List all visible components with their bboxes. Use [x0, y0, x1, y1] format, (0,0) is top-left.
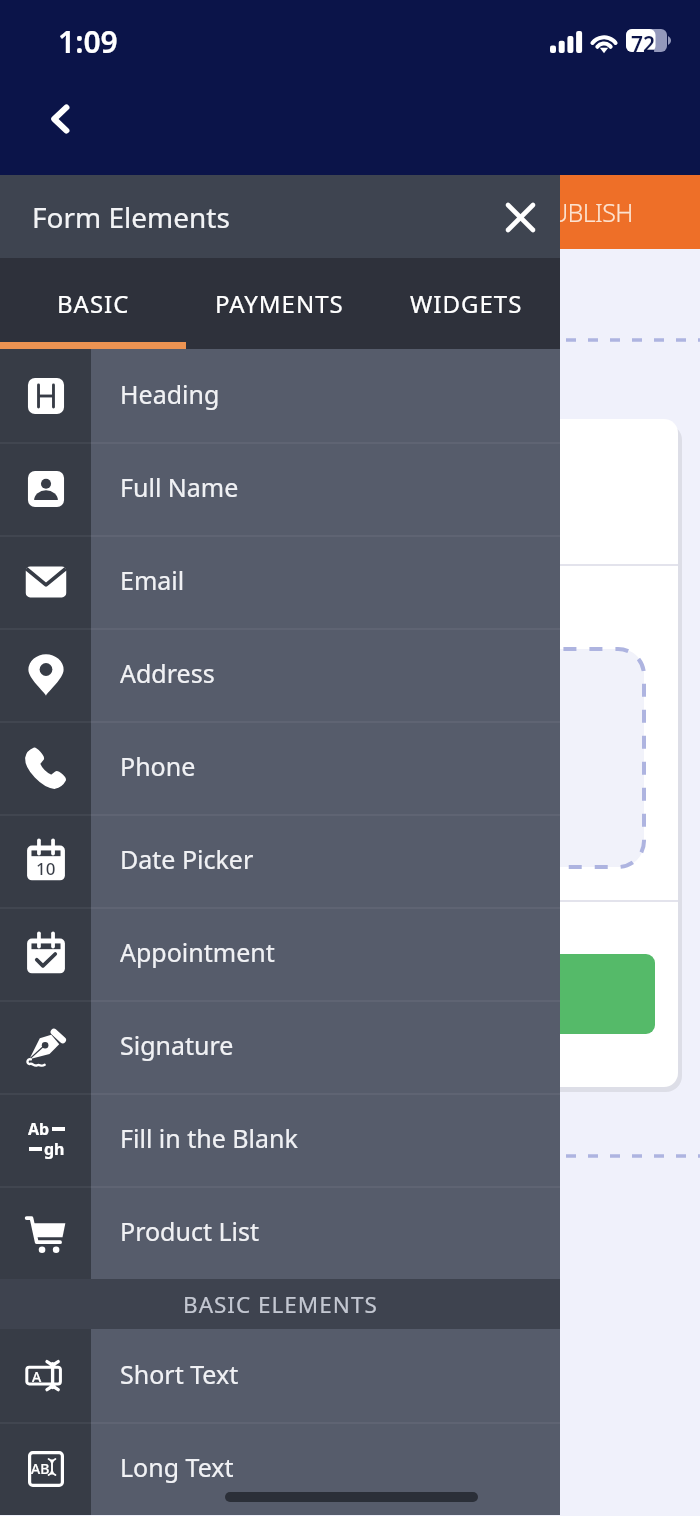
button[interactable]: Close: [489, 186, 551, 248]
button[interactable]: Back: [30, 88, 92, 150]
staticText: Appointment: [120, 935, 275, 969]
staticText: Fill in the Blank: [120, 1121, 298, 1155]
staticText: gh: [44, 1138, 65, 1160]
staticText: Long Text: [120, 1450, 234, 1484]
staticText: Heading: [120, 377, 220, 411]
button[interactable]: AB: [0, 1422, 560, 1515]
staticText: Ab: [28, 1118, 50, 1140]
button[interactable]: 10: [0, 814, 560, 907]
button[interactable]: WIDGETS: [373, 258, 560, 349]
button[interactable]: Product List: [0, 1186, 560, 1279]
button[interactable]: Full Name: [0, 442, 560, 535]
button[interactable]: Appointment: [0, 907, 560, 1000]
staticText: Date Picker: [120, 842, 254, 876]
button[interactable]: Email: [0, 535, 560, 628]
staticText: BASIC ELEMENTS: [183, 1289, 378, 1320]
button[interactable]: Heading: [0, 349, 560, 442]
button[interactable]: PAYMENTS: [186, 258, 373, 349]
staticText: 72: [631, 30, 656, 59]
staticText: Address: [120, 656, 215, 690]
staticText: AB: [31, 1459, 50, 1478]
staticText: Short Text: [120, 1357, 239, 1391]
staticText: Phone: [120, 749, 196, 783]
staticText: PAYMENTS: [215, 287, 344, 320]
staticText: BASIC: [57, 287, 130, 320]
button[interactable]: Phone: [0, 721, 560, 814]
staticText: Product List: [120, 1214, 259, 1248]
button[interactable]: Signature: [0, 1000, 560, 1093]
staticText: WIDGETS: [410, 287, 523, 320]
staticText: Full Name: [120, 470, 239, 504]
staticText: Form Elements: [32, 198, 230, 236]
staticText: Email: [120, 563, 185, 597]
button[interactable]: Address: [0, 628, 560, 721]
staticText: Signature: [120, 1028, 234, 1062]
staticText: A: [32, 1367, 42, 1386]
button[interactable]: BASIC: [0, 258, 186, 349]
button[interactable]: A: [0, 1329, 560, 1422]
button[interactable]: Ab: [0, 1093, 560, 1186]
staticText: 1:09: [58, 21, 118, 62]
staticText: 10: [36, 857, 56, 880]
button[interactable]: PUBLISH: [0, 175, 700, 249]
staticText: PUBLISH: [536, 195, 633, 229]
